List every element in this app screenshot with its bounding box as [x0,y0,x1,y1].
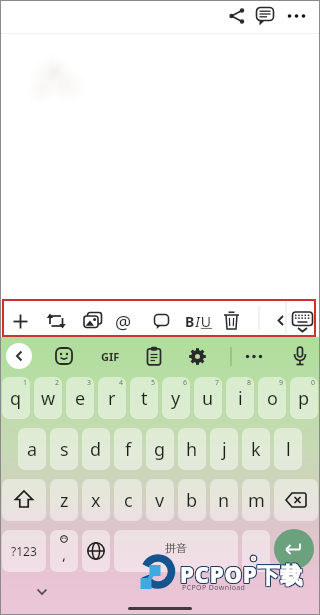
button[interactable] [34,586,50,598]
staticText: 2 [55,378,60,388]
staticText: x [91,488,101,513]
button[interactable]: e [66,377,94,419]
staticText: GIF [101,349,120,364]
staticText: PCPOP下载 [181,560,305,588]
staticText: ?123 [11,543,37,559]
staticText: v [155,488,165,513]
button[interactable] [153,313,170,330]
staticText: PCPOP Download [182,583,246,593]
button[interactable] [223,311,240,331]
staticText: BIU [185,312,213,331]
staticText: @ [115,310,132,333]
staticText: a [27,437,38,462]
button[interactable] [188,347,207,366]
staticText: 6 [183,378,188,388]
button[interactable] [274,479,318,521]
staticText: e [75,386,86,411]
button[interactable]: s [50,428,78,470]
button[interactable]: n [210,479,238,521]
button[interactable]: @ [112,310,135,333]
button[interactable]: i [226,377,254,419]
button[interactable]: p [290,377,318,419]
button[interactable]: BIU [184,311,213,332]
button[interactable] [276,313,286,328]
button[interactable] [83,311,103,331]
button[interactable]: h [178,428,206,470]
button[interactable]: w [34,377,62,419]
button[interactable] [293,346,307,367]
staticText: 。 [250,543,263,559]
button[interactable]: d [82,428,110,470]
button[interactable] [55,347,73,365]
staticText: y [171,386,181,411]
button[interactable]: z [50,479,78,521]
button[interactable]: c [114,479,142,521]
button[interactable]: l [274,428,302,470]
staticText: m [248,488,265,513]
button[interactable]: f [114,428,142,470]
button[interactable] [274,529,314,569]
button[interactable]: ?123 [2,530,46,572]
staticText: , [62,544,67,564]
button[interactable]: 。 [242,530,270,572]
staticText: 8 [247,378,252,388]
button[interactable]: v [146,479,174,521]
button[interactable]: u [194,377,222,419]
staticText: PCPOP下载 [179,560,303,588]
staticText: 7 [215,378,220,388]
button[interactable] [228,7,246,25]
staticText: h [186,437,198,462]
button[interactable] [46,311,66,331]
staticText: d [90,437,102,462]
staticText: n [218,488,230,513]
button[interactable] [146,346,162,366]
button[interactable]: GIF [97,347,123,365]
button[interactable]: k [242,428,270,470]
button[interactable] [286,8,307,24]
staticText: g [154,437,166,462]
button[interactable]: a [18,428,46,470]
staticText: PCPOP下载 [180,559,304,587]
staticText: t [141,386,148,411]
button[interactable]: o [258,377,286,419]
button[interactable]: j [210,428,238,470]
button[interactable] [6,343,32,369]
staticText: PCPOP下载 [179,558,303,586]
button[interactable]: , [50,530,78,572]
button[interactable]: x [82,479,110,521]
button[interactable]: b [178,479,206,521]
staticText: k [251,437,261,462]
staticText: 4 [119,378,124,388]
staticText: 5 [151,378,156,388]
staticText: w [41,386,56,411]
staticText: s [60,437,69,462]
button[interactable] [291,310,314,334]
staticText: r [108,386,116,411]
staticText: PCPOP下载 [179,559,303,587]
button[interactable]: q [2,377,30,419]
button[interactable]: y [162,377,190,419]
button[interactable] [244,350,264,363]
staticText: 0 [311,378,316,388]
button[interactable] [2,479,46,521]
staticText: i [238,386,243,411]
staticText: u [202,386,214,411]
button[interactable]: m [242,479,270,521]
button[interactable]: 拼音 [114,530,238,572]
button[interactable] [82,530,110,572]
staticText: c [124,488,133,513]
staticText: PCPOP下载 [180,558,304,586]
button[interactable]: r [98,377,126,419]
staticText: q [10,386,22,411]
staticText: PCPOP下载 [180,560,304,588]
button[interactable] [255,6,276,28]
staticText: f [125,437,132,462]
button[interactable]: g [146,428,174,470]
staticText: 1 [23,378,28,388]
staticText: PCPOP下载 [181,558,305,586]
button[interactable]: t [130,377,158,419]
staticText: 拼音 [165,541,187,555]
staticText: o [267,386,278,411]
staticText: 3 [87,378,92,388]
button[interactable] [12,313,29,330]
